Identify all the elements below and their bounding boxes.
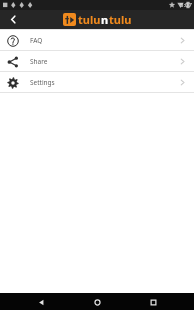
button[interactable]: Share: [0, 51, 194, 71]
staticText: Share: [30, 57, 48, 66]
staticText: tulu: [78, 12, 101, 27]
button[interactable]: Home: [90, 295, 104, 309]
staticText: FAQ: [30, 36, 43, 45]
staticText: tulu: [109, 12, 132, 27]
button[interactable]: Recents: [146, 295, 160, 309]
button[interactable]: FAQ: [0, 30, 194, 50]
staticText: Settings: [30, 78, 55, 87]
button[interactable]: Settings: [0, 72, 194, 92]
button[interactable]: Back: [0, 10, 26, 29]
staticText: 5:07: [180, 1, 192, 9]
button[interactable]: Back: [34, 295, 48, 309]
staticText: n: [101, 12, 109, 27]
